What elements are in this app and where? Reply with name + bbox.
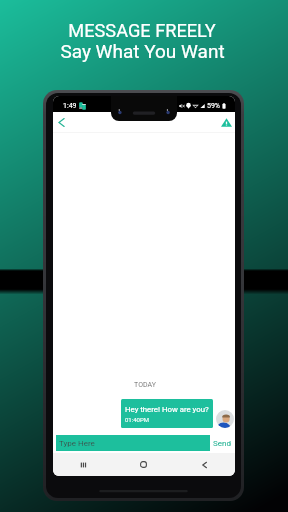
staticText: Type Here bbox=[59, 439, 95, 448]
button[interactable]: Back bbox=[53, 113, 70, 131]
staticText: MESSAGE FREELY bbox=[68, 20, 216, 41]
button[interactable]: Recents bbox=[53, 453, 113, 476]
staticText: 59% bbox=[207, 102, 220, 110]
staticText: Send bbox=[213, 439, 231, 448]
staticText: TODAY bbox=[54, 381, 235, 389]
button[interactable]: Home bbox=[113, 453, 174, 476]
staticText: 01:40PM bbox=[125, 416, 149, 423]
staticText: Hey there! How are you? bbox=[125, 405, 209, 414]
button[interactable]: Type Here bbox=[56, 435, 210, 451]
button[interactable]: Alerts bbox=[217, 113, 235, 131]
button[interactable]: Send bbox=[210, 439, 232, 448]
staticText: 1:49 bbox=[63, 102, 77, 110]
button[interactable]: Back bbox=[174, 453, 235, 476]
staticText: Say What You Want bbox=[60, 40, 225, 62]
